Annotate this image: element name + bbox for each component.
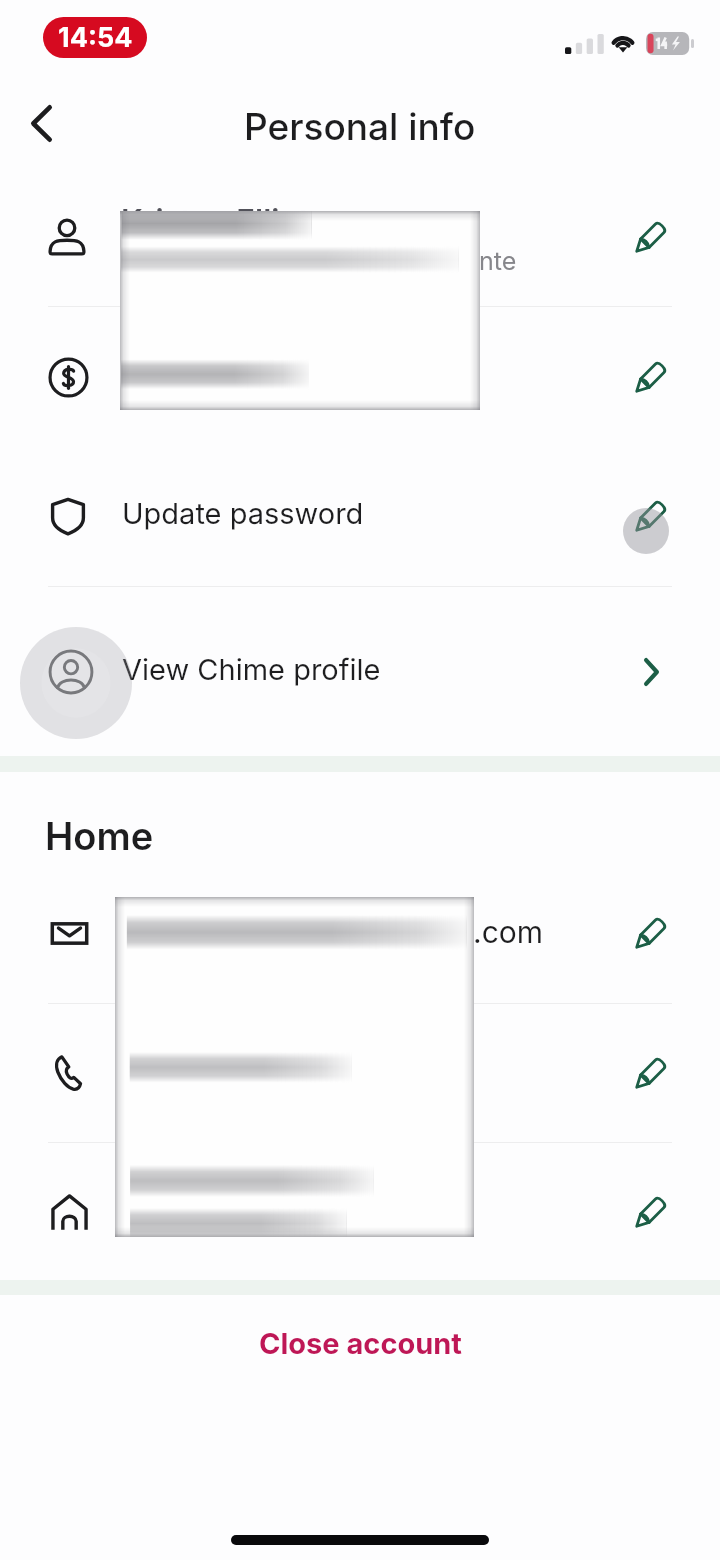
staticText: Update password — [122, 496, 364, 531]
button[interactable]: Edit — [618, 1040, 684, 1106]
button[interactable]: Edit — [618, 1179, 684, 1245]
staticText: .com — [473, 914, 544, 950]
button[interactable]: Edit — [618, 204, 684, 270]
button[interactable]: Update password — [0, 461, 720, 571]
staticText: nte — [479, 246, 517, 276]
staticText: Kristen Elliot — [121, 202, 310, 240]
button[interactable]: Edit — [618, 483, 684, 549]
button[interactable]: Edit — [618, 344, 684, 410]
staticText: Personal info — [244, 104, 476, 149]
staticText: Home — [45, 813, 154, 859]
staticText: 14:54 — [58, 21, 133, 54]
button[interactable]: View Chime profile — [0, 617, 720, 727]
button[interactable]: Edit — [0, 182, 720, 292]
button[interactable]: Edit — [0, 1018, 720, 1128]
button[interactable]: Edit — [0, 878, 720, 988]
staticText: View Chime profile — [122, 652, 381, 687]
button[interactable]: Edit — [0, 1157, 720, 1267]
button[interactable]: Edit — [618, 900, 684, 966]
button[interactable]: Back — [5, 87, 77, 159]
button[interactable]: Edit — [0, 322, 720, 432]
staticText: Close account — [259, 1326, 462, 1361]
button[interactable]: Close account — [235, 1320, 486, 1367]
